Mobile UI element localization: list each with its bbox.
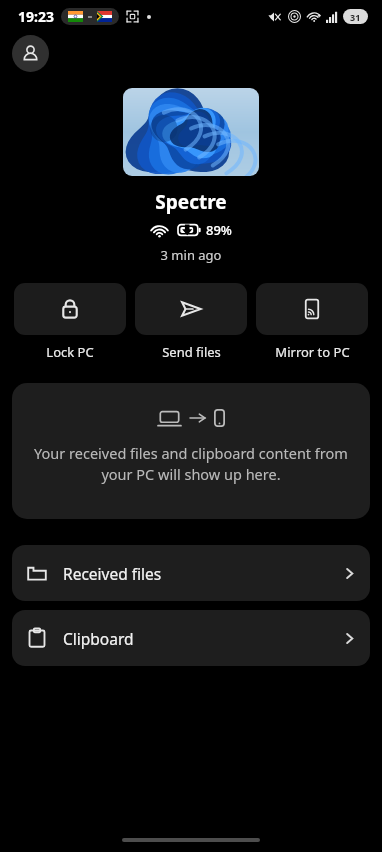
button[interactable]: Received files — [12, 545, 370, 601]
staticText: Clipboard — [63, 628, 134, 649]
staticText: Received files — [63, 563, 162, 584]
staticText: Spectre — [0, 189, 382, 215]
staticText: 19:23 — [18, 7, 54, 26]
staticText: Send files — [162, 343, 221, 361]
button[interactable]: Clipboard — [12, 610, 370, 666]
staticText: Mirror to PC — [275, 343, 350, 361]
staticText: 31 — [350, 11, 361, 23]
button[interactable]: Send files — [135, 283, 247, 361]
staticText: 89% — [206, 221, 232, 239]
button[interactable]: Account — [12, 35, 49, 72]
button[interactable]: Lock PC — [14, 283, 126, 361]
staticText: Your received files and clipboard conten… — [30, 443, 352, 485]
staticText: 3 min ago — [0, 246, 382, 264]
staticText: Lock PC — [46, 343, 94, 361]
button[interactable]: Mirror to PC — [256, 283, 368, 361]
